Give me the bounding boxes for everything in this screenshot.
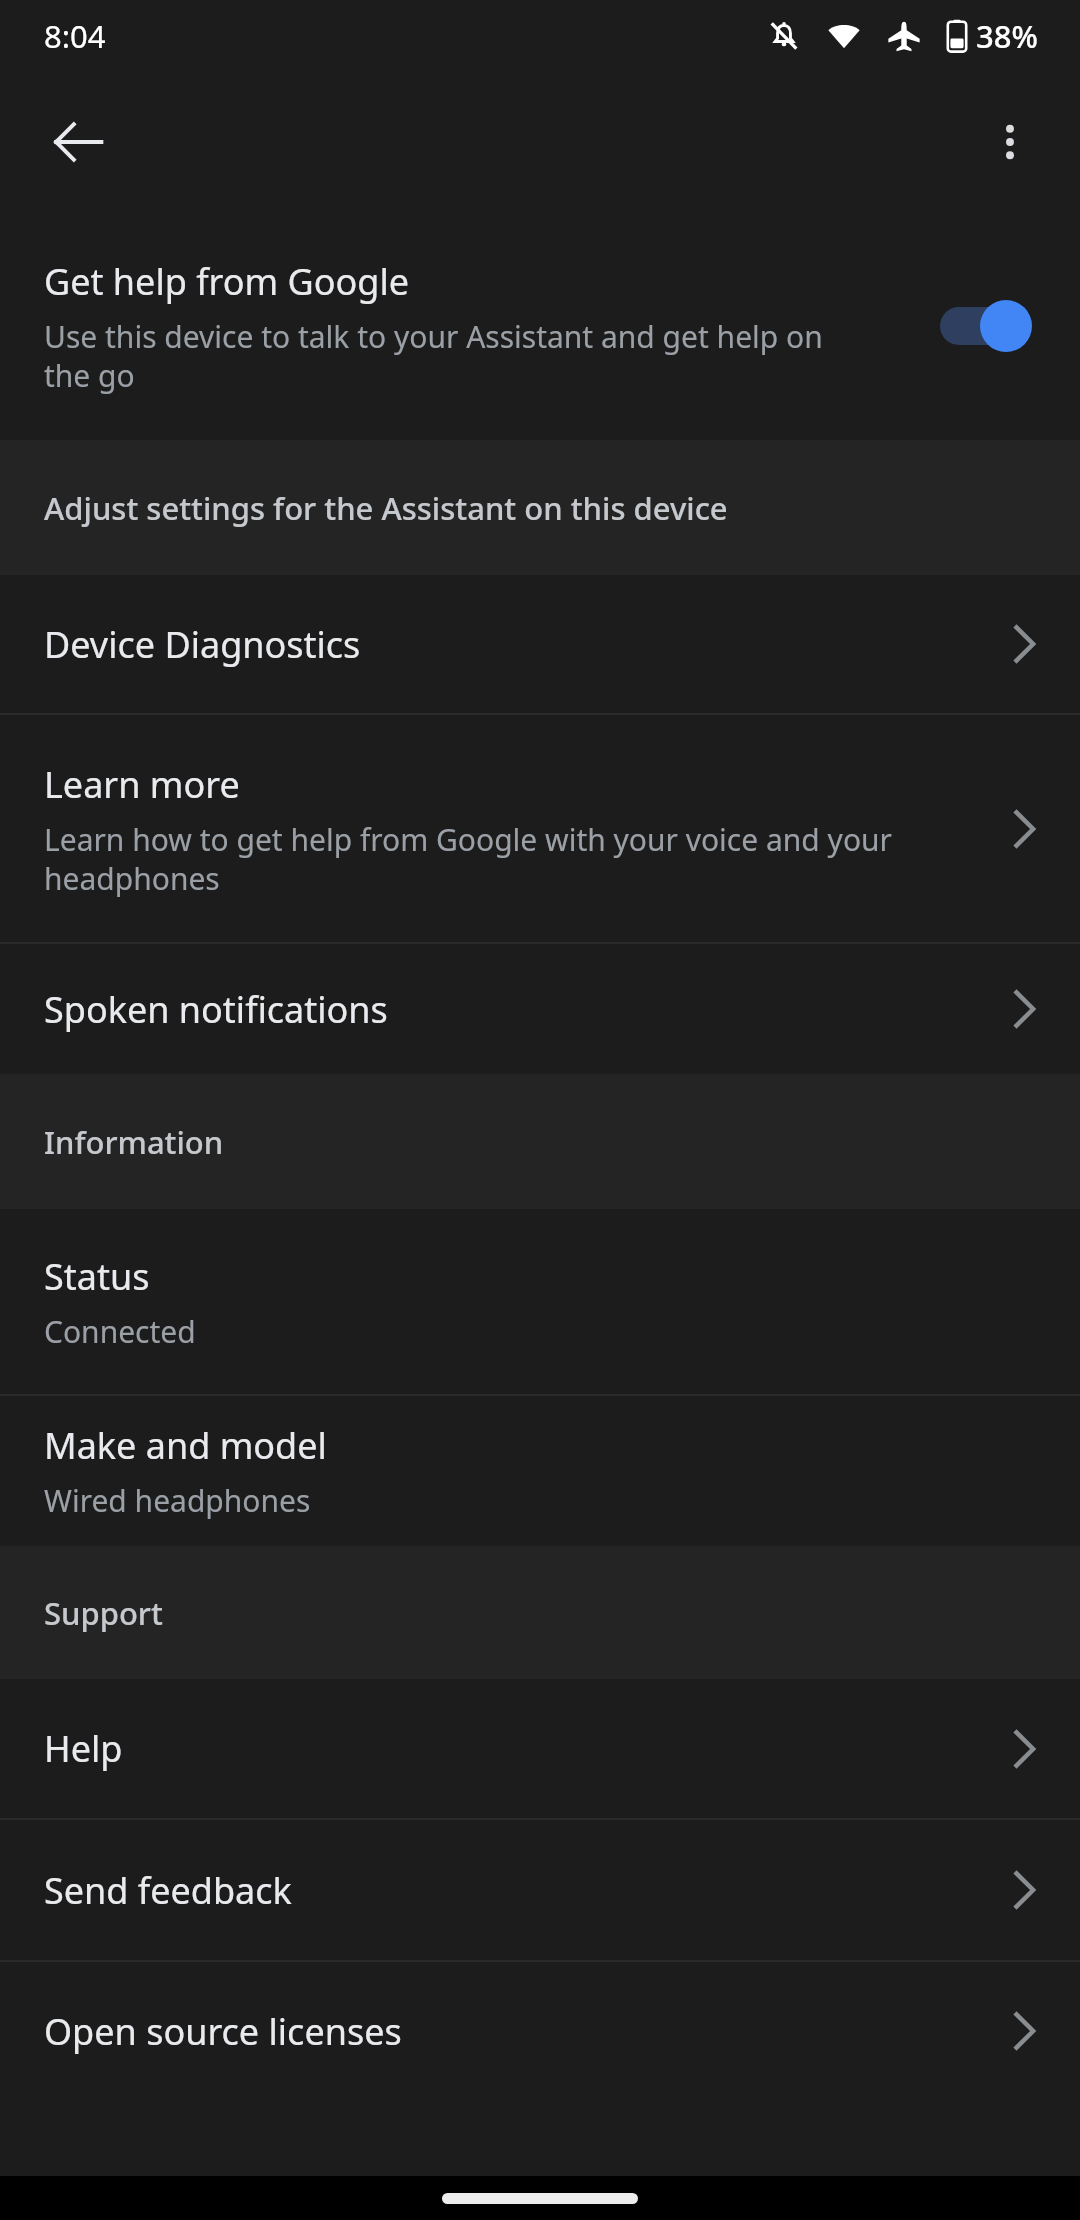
- button[interactable]: Spoken notifications: [0, 944, 1080, 1074]
- staticText: 38%: [976, 15, 1038, 57]
- button[interactable]: Help: [0, 1679, 1080, 1818]
- staticText: Spoken notifications: [44, 985, 388, 1034]
- staticText: Get help from Google: [44, 257, 410, 306]
- staticText: Open source licenses: [44, 2007, 402, 2056]
- button[interactable]: Get help from Google: [0, 212, 1080, 440]
- staticText: Wired headphones: [44, 1480, 311, 1521]
- button[interactable]: Make and model: [0, 1396, 1080, 1546]
- button[interactable]: Device Diagnostics: [0, 575, 1080, 713]
- staticText: Learn how to get help from Google with y…: [44, 819, 924, 898]
- button[interactable]: More options: [962, 94, 1058, 190]
- staticText: Use this device to talk to your Assistan…: [44, 316, 864, 395]
- button[interactable]: Learn more: [0, 715, 1080, 942]
- staticText: Status: [44, 1252, 150, 1301]
- button[interactable]: Get help from Google toggle, on: [940, 290, 1040, 362]
- staticText: Connected: [44, 1311, 196, 1352]
- staticText: Device Diagnostics: [44, 620, 361, 669]
- button[interactable]: Open source licenses: [0, 1962, 1080, 2100]
- staticText: Support: [44, 1592, 163, 1634]
- button[interactable]: Send feedback: [0, 1820, 1080, 1960]
- staticText: Make and model: [44, 1421, 327, 1470]
- button[interactable]: Status: [0, 1209, 1080, 1394]
- staticText: Adjust settings for the Assistant on thi…: [44, 487, 728, 529]
- button[interactable]: Back: [30, 94, 126, 190]
- staticText: Information: [44, 1121, 224, 1163]
- staticText: Send feedback: [44, 1866, 292, 1915]
- staticText: Help: [44, 1724, 123, 1773]
- staticText: Learn more: [44, 760, 240, 809]
- staticText: 8:04: [44, 15, 106, 57]
